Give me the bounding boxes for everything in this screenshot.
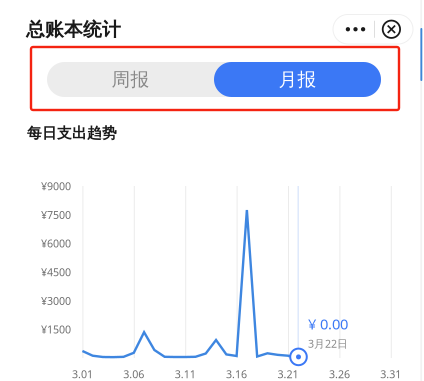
staticText: 3月22日 (308, 336, 348, 351)
staticText: 3.06 (123, 367, 144, 381)
staticText: ¥3000 (41, 294, 71, 308)
staticText: 每日支出趋势 (27, 124, 117, 142)
staticText: ¥6000 (41, 236, 71, 250)
staticText: 月报 (278, 68, 316, 91)
staticText: ¥1500 (41, 322, 71, 336)
staticText: 总账本统计 (26, 18, 121, 41)
staticText: ¥ 0.00 (308, 314, 348, 333)
staticText: 3.01 (72, 367, 93, 381)
button[interactable]: 周报 (47, 62, 214, 97)
staticText: 3.26 (329, 367, 350, 381)
staticText: 周报 (111, 68, 149, 91)
staticText: ¥4500 (41, 265, 71, 279)
staticText: 3.16 (226, 367, 247, 381)
button[interactable]: 月报 (214, 62, 381, 97)
button[interactable]: More (333, 14, 374, 44)
staticText: ¥7500 (41, 208, 71, 222)
staticText: 3.21 (277, 367, 298, 381)
button[interactable]: Close (375, 14, 413, 44)
staticText: 3.31 (380, 367, 401, 381)
staticText: ¥9000 (41, 179, 71, 193)
staticText: 3.11 (175, 367, 196, 381)
